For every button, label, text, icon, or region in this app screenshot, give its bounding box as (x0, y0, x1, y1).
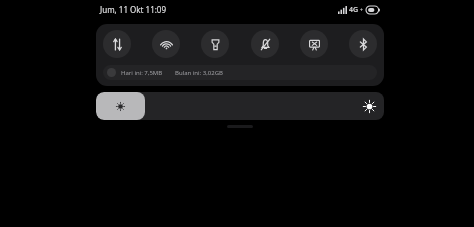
staticText: Jum, 11 Okt 11:09 (100, 4, 166, 15)
button[interactable]: Silent mode (251, 30, 279, 58)
button[interactable]: Flashlight (201, 30, 229, 58)
staticText: Hari ini: 7,5MB (121, 69, 163, 77)
button[interactable]: Wi-Fi (152, 30, 180, 58)
staticText: + (360, 7, 363, 14)
button[interactable]: Hari ini: 7,5MB (103, 65, 377, 80)
button[interactable]: Cast screen (300, 30, 328, 58)
staticText: Bulan ini: 3,02GB (175, 69, 223, 77)
button[interactable]: Mobile data (103, 30, 131, 58)
button[interactable] (227, 125, 253, 128)
button[interactable]: Brightness (96, 92, 384, 120)
button[interactable]: Bluetooth (349, 30, 377, 58)
staticText: 4G (349, 5, 359, 15)
